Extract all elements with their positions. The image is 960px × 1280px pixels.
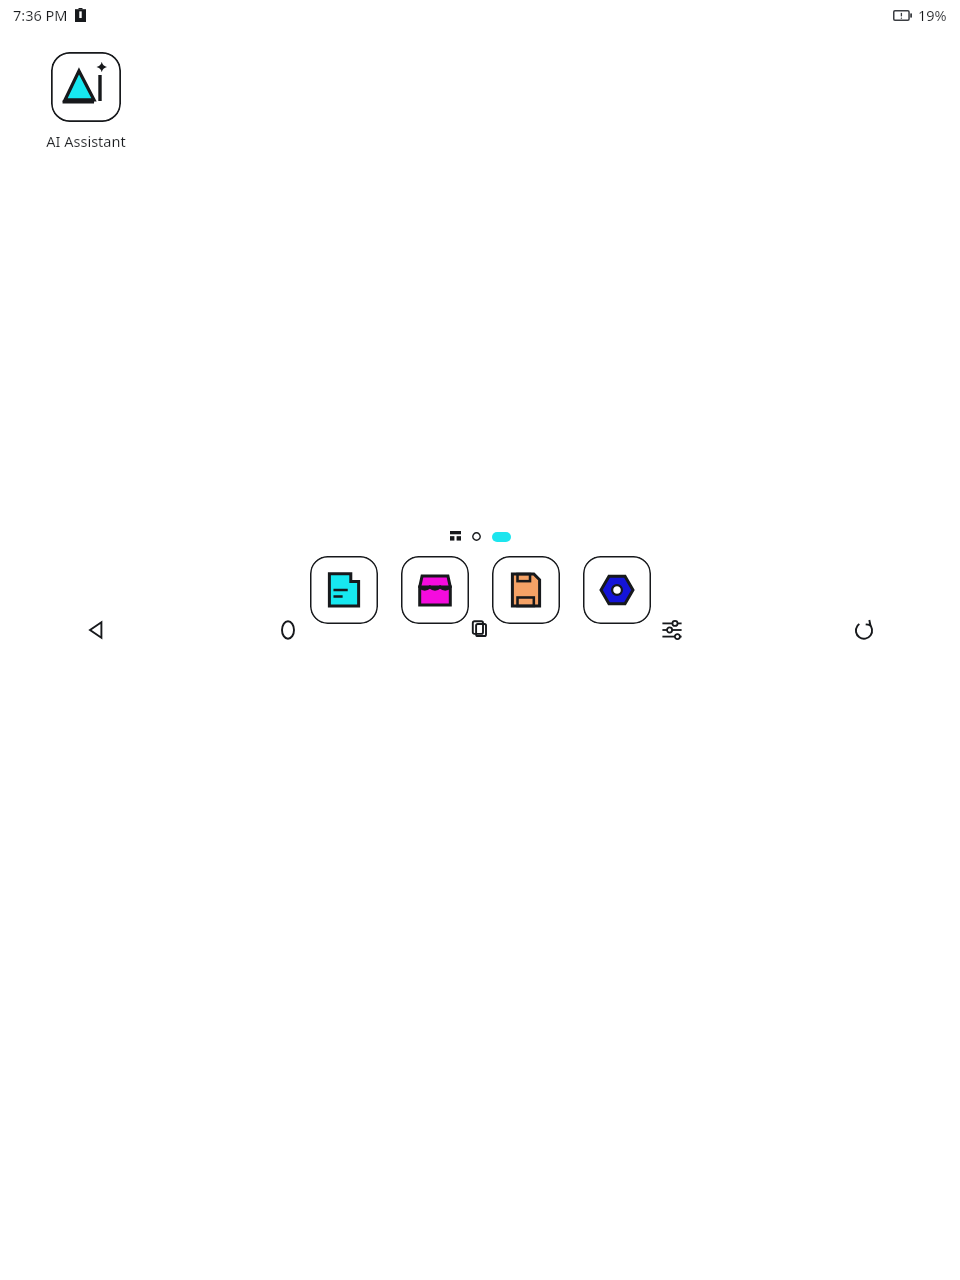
staticText: AI Assistant [46,131,126,151]
button[interactable]: Home [192,600,384,660]
button[interactable]: Back [0,600,192,660]
button[interactable]: Refresh [768,600,960,660]
button[interactable]: AI Assistant [34,52,138,151]
button[interactable]: Save [492,556,560,624]
button[interactable]: All apps [450,531,461,542]
button[interactable]: Settings [576,600,768,660]
button[interactable]: Page 2, current [492,532,511,542]
staticText: 7:36 PM [13,5,68,25]
button[interactable]: Files [310,556,378,624]
button[interactable]: Settings [583,556,651,624]
button[interactable]: Recent apps [384,600,576,660]
staticText: 19% [918,5,947,25]
button[interactable]: Page 1 [472,532,481,541]
button[interactable]: Store [401,556,469,624]
